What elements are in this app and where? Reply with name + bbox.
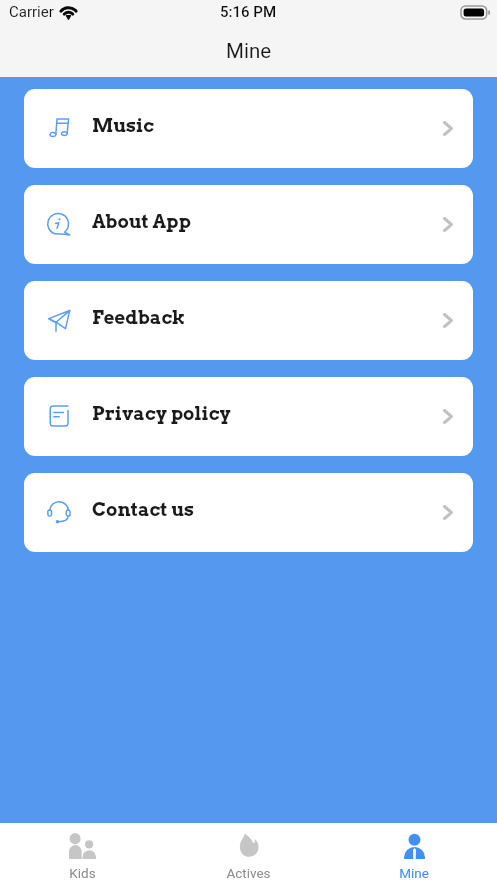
button[interactable]: Actives (165, 823, 331, 883)
staticText: Music (92, 114, 154, 136)
button[interactable]: Music (24, 89, 473, 168)
staticText: Actives (226, 865, 271, 881)
staticText: Privacy policy (92, 402, 231, 424)
button[interactable]: Contact us (24, 473, 473, 552)
button[interactable]: Kids (0, 823, 165, 883)
staticText: Kids (69, 865, 96, 881)
button[interactable]: Mine (331, 823, 497, 883)
staticText: Mine (399, 865, 429, 881)
staticText: Carrier (9, 3, 54, 21)
staticText: Contact us (92, 498, 195, 520)
staticText: 5:16 PM (220, 3, 277, 21)
button[interactable]: Feedback (24, 281, 473, 360)
staticText: Feedback (92, 306, 186, 328)
button[interactable]: Privacy policy (24, 377, 473, 456)
button[interactable]: About App (24, 185, 473, 264)
staticText: Mine (226, 39, 272, 63)
staticText: About App (92, 210, 191, 232)
